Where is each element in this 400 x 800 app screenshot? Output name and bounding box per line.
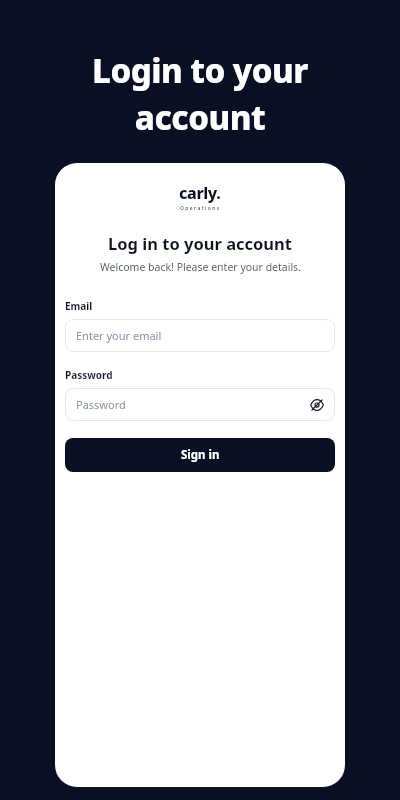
button[interactable]: Enter your email (65, 319, 335, 352)
staticText: Password (65, 368, 113, 382)
button[interactable]: Show password (307, 395, 327, 415)
staticText: Welcome back! Please enter your details. (100, 260, 301, 274)
staticText: Email (65, 299, 93, 313)
staticText: Password (76, 397, 126, 412)
staticText: Log in to your account (108, 232, 292, 254)
staticText: Enter your email (76, 328, 162, 343)
button[interactable]: Password (65, 388, 335, 421)
staticText: Login to your account (92, 48, 308, 140)
staticText: Sign in (181, 447, 220, 463)
button[interactable]: Sign in (65, 438, 335, 472)
staticText: carly. (179, 182, 221, 204)
staticText: Operations (180, 205, 221, 212)
